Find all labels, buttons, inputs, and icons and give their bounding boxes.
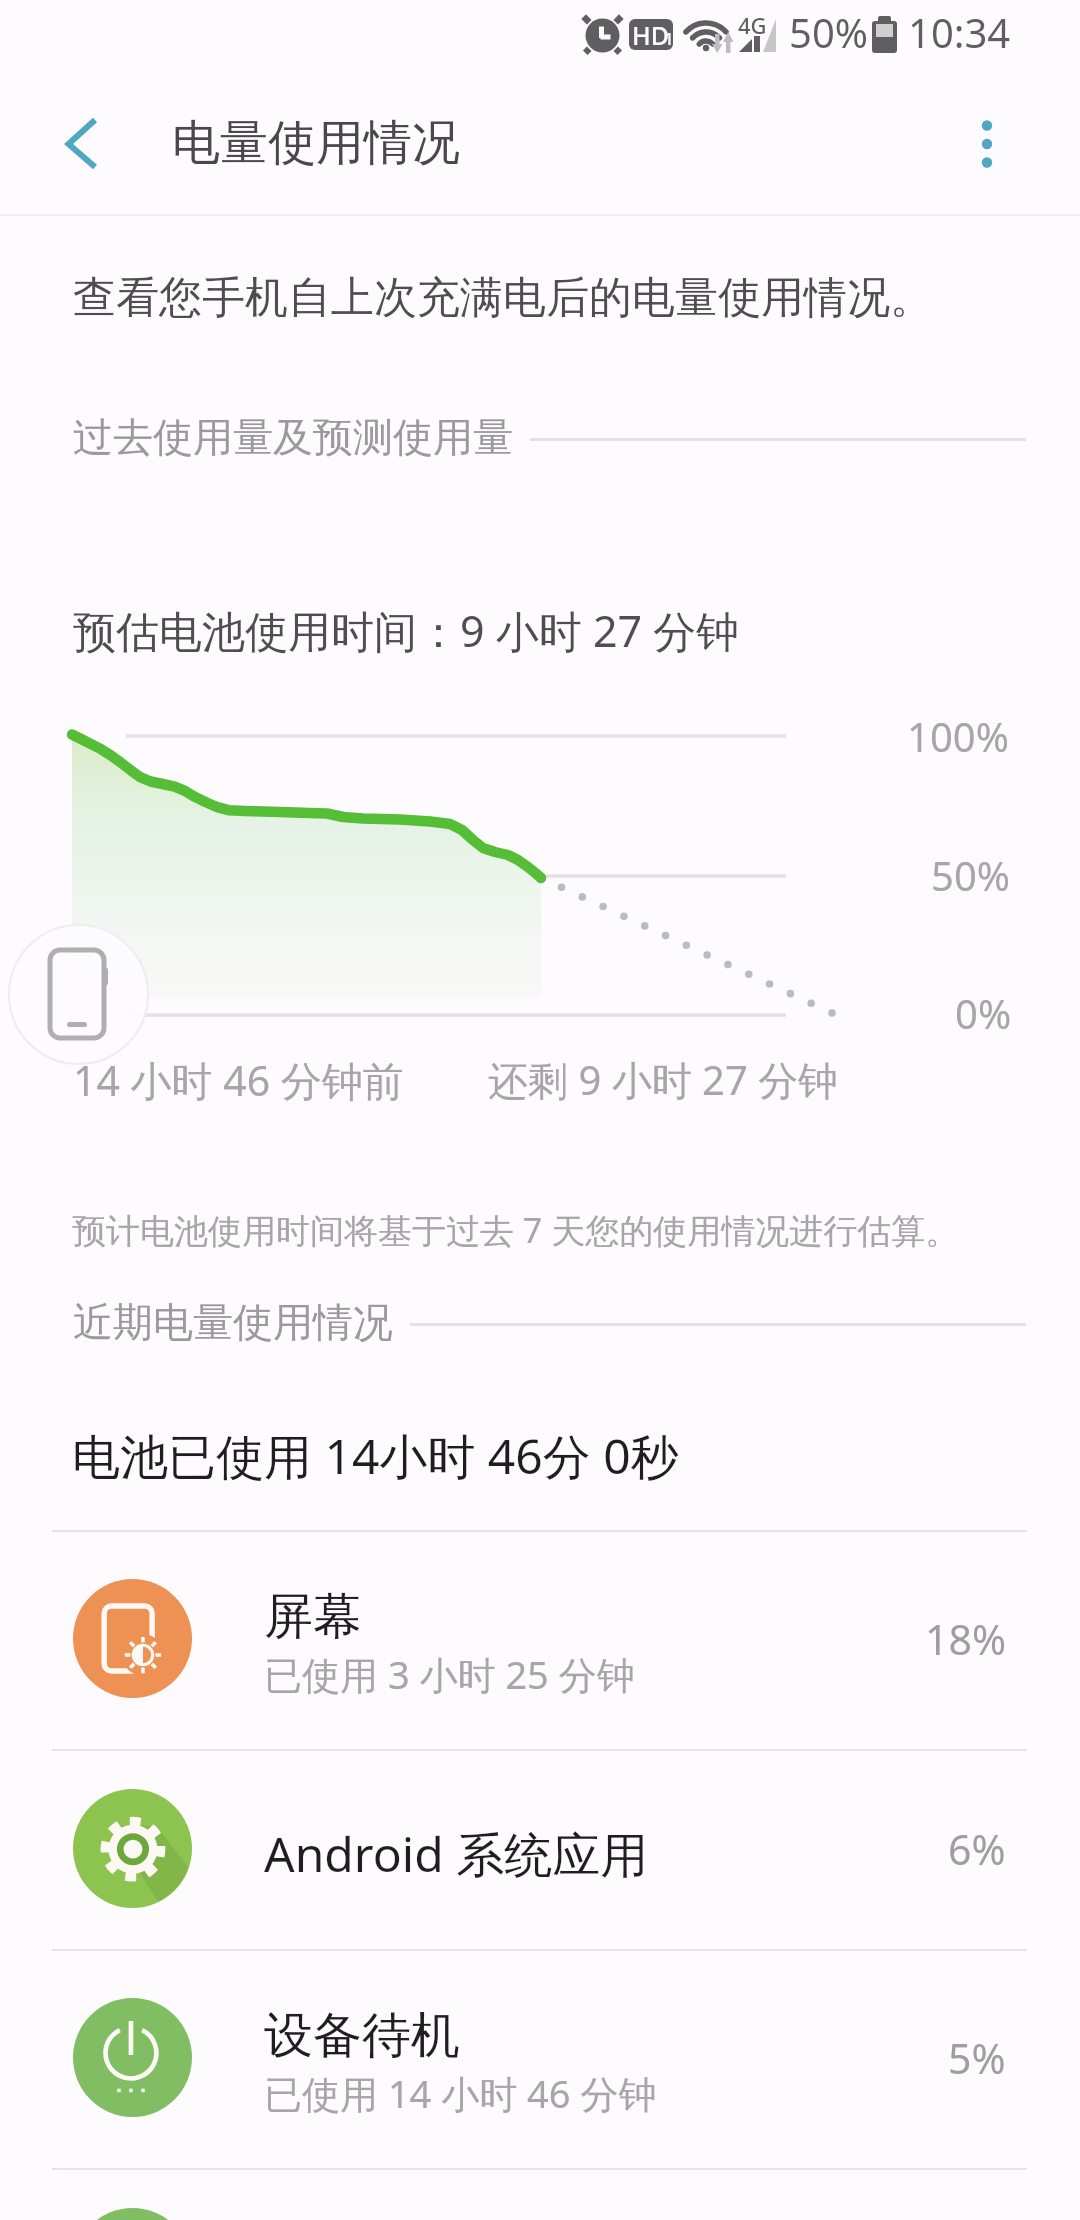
staticText: 过去使用量及预测使用量 — [73, 412, 513, 462]
button[interactable]: Back — [34, 96, 130, 192]
button[interactable]: More options — [939, 96, 1035, 192]
staticText: 100% — [907, 709, 1009, 763]
staticText: 4G — [738, 10, 767, 40]
staticText: 电池已使用 14小时 46分 0秒 — [72, 1423, 679, 1489]
button[interactable]: Android 系统应用 — [0, 1749, 1080, 1949]
staticText: 50% — [789, 5, 868, 59]
staticText: 14 小时 46 分钟前 — [73, 1052, 404, 1108]
staticText: 预估电池使用时间：9 小时 27 分钟 — [73, 601, 740, 660]
staticText: 已使用 14 小时 46 分钟 — [264, 2067, 657, 2119]
staticText: 查看您手机自上次充满电后的电量使用情况。 — [73, 271, 933, 325]
staticText: 10:34 — [908, 5, 1011, 59]
staticText: 屏幕 — [264, 1586, 362, 1648]
staticText: 0% — [955, 986, 1012, 1040]
staticText: 5% — [948, 2030, 1006, 2086]
staticText: 50% — [931, 848, 1010, 902]
staticText: 18% — [925, 1611, 1006, 1667]
staticText: 设备待机 — [264, 2005, 460, 2067]
staticText: HD — [632, 18, 669, 52]
button[interactable]: 设备待机 — [0, 1949, 1080, 2168]
staticText: 还剩 9 小时 27 分钟 — [488, 1052, 839, 1107]
staticText: 预计电池使用时间将基于过去 7 天您的使用情况进行估算。 — [72, 1207, 960, 1253]
staticText: Android 系统应用 — [264, 1821, 649, 1887]
staticText: 6% — [948, 1821, 1006, 1877]
staticText: 电量使用情况 — [172, 113, 460, 173]
button[interactable]: 屏幕 — [0, 1530, 1080, 1749]
staticText: 近期电量使用情况 — [73, 1297, 393, 1347]
staticText: 已使用 3 小时 25 分钟 — [264, 1648, 635, 1700]
staticText: 1 — [664, 27, 674, 50]
